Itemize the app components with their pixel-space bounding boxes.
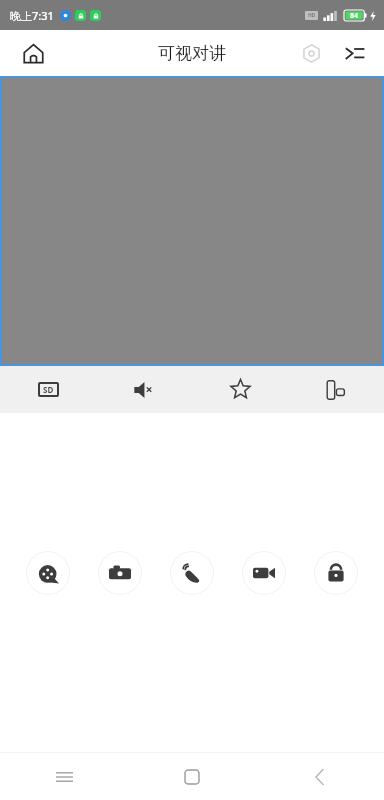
button[interactable]: Record: [242, 551, 286, 595]
button[interactable]: Back: [256, 753, 384, 800]
button[interactable]: Home: [128, 753, 256, 800]
button[interactable]: List: [338, 36, 372, 70]
button[interactable]: Talk: [170, 551, 214, 595]
button[interactable]: Snapshot: [98, 551, 142, 595]
button[interactable]: Rotate screen: [288, 366, 384, 413]
button[interactable]: SD quality: [0, 366, 96, 413]
staticText: 晚上7:31: [10, 8, 54, 23]
staticText: SD: [43, 384, 54, 395]
button[interactable]: Settings: [294, 36, 328, 70]
button[interactable]: Home: [16, 36, 50, 70]
button[interactable]: Recents: [0, 753, 128, 800]
button[interactable]: Favorite: [192, 366, 288, 413]
staticText: 可视对讲: [158, 43, 226, 64]
staticText: 84: [350, 11, 359, 21]
button[interactable]: Mute: [96, 366, 192, 413]
staticText: HD: [308, 12, 316, 19]
button[interactable]: Playback: [26, 551, 70, 595]
button[interactable]: Unlock: [314, 551, 358, 595]
